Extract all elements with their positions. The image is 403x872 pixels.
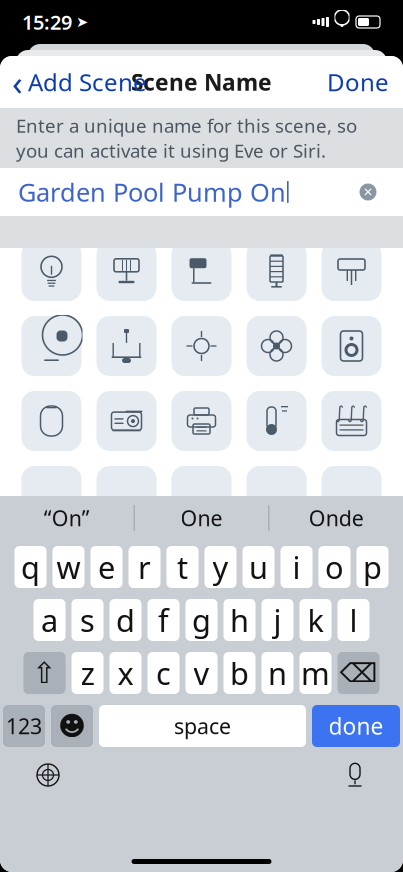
button[interactable]: h: [223, 599, 255, 641]
button[interactable]: o: [318, 546, 350, 588]
button[interactable]: k: [299, 599, 331, 641]
staticText: ⇧: [32, 656, 57, 690]
staticText: a: [41, 600, 58, 640]
staticText: u: [249, 547, 268, 587]
staticText: ✕: [363, 185, 373, 199]
staticText: p: [363, 547, 382, 587]
button[interactable]: j: [261, 599, 293, 641]
button[interactable]: Done: [313, 60, 403, 104]
button[interactable]: u: [242, 546, 274, 588]
staticText: b: [230, 653, 249, 693]
staticText: One: [180, 504, 222, 532]
button[interactable]: s: [71, 599, 103, 641]
staticText: s: [80, 600, 95, 640]
staticText: Onde: [309, 504, 364, 532]
staticText: r: [138, 547, 151, 587]
button[interactable]: 123: [3, 705, 45, 747]
button[interactable]: n: [261, 652, 293, 694]
staticText: i: [292, 547, 300, 587]
button[interactable]: z: [71, 652, 103, 694]
button[interactable]: q: [14, 546, 46, 588]
staticText: f: [158, 600, 169, 640]
staticText: 15:29: [22, 9, 72, 35]
button[interactable]: Smart speaker: [21, 391, 81, 451]
button[interactable]: Light bulb: [21, 241, 81, 301]
staticText: y: [212, 547, 228, 587]
button[interactable]: Delete: [337, 652, 379, 694]
button[interactable]: i: [280, 546, 312, 588]
staticText: x: [117, 653, 133, 693]
staticText: t: [177, 547, 188, 587]
staticText: ‹: [12, 59, 23, 105]
button[interactable]: Arc lamp: [21, 316, 81, 376]
staticText: space: [174, 712, 231, 740]
staticText: k: [307, 600, 323, 640]
staticText: ➤: [76, 14, 88, 30]
button[interactable]: Desk lamp: [171, 241, 231, 301]
button[interactable]: “On”: [0, 496, 134, 540]
button[interactable]: d: [109, 599, 141, 641]
button[interactable]: Heater: [321, 391, 381, 451]
button[interactable]: c: [147, 652, 179, 694]
staticText: ∫: [335, 403, 344, 422]
button[interactable]: Dictate: [333, 755, 377, 795]
staticText: z: [80, 653, 94, 693]
button[interactable]: f: [147, 599, 179, 641]
button[interactable]: Speaker: [321, 316, 381, 376]
button[interactable]: Emoji: [51, 705, 93, 747]
staticText: q: [21, 547, 40, 587]
staticText: m: [301, 653, 330, 693]
staticText: Scene Name: [131, 67, 272, 97]
button[interactable]: w: [52, 546, 84, 588]
button[interactable]: y: [204, 546, 236, 588]
button[interactable]: Column lamp: [246, 241, 306, 301]
staticText: Garden Pool Pump On: [18, 175, 286, 209]
button[interactable]: v: [185, 652, 217, 694]
button[interactable]: g: [185, 599, 217, 641]
button[interactable]: Table lamp: [96, 241, 156, 301]
button[interactable]: Clear text: [351, 175, 385, 209]
staticText: o: [325, 547, 344, 587]
button[interactable]: Printer: [171, 391, 231, 451]
button[interactable]: r: [128, 546, 160, 588]
staticText: ⌫: [339, 658, 377, 688]
staticText: j: [273, 600, 281, 640]
staticText: v: [193, 653, 209, 693]
button[interactable]: m: [299, 652, 331, 694]
button[interactable]: Onde: [269, 496, 403, 540]
staticText: done: [328, 711, 383, 741]
button[interactable]: ‹: [0, 60, 159, 104]
button[interactable]: Thermometer: [246, 391, 306, 451]
staticText: w: [56, 547, 80, 587]
staticText: l: [349, 600, 357, 640]
staticText: ∫: [347, 403, 356, 422]
button[interactable]: Pendant lamp: [96, 316, 156, 376]
button[interactable]: l: [337, 599, 369, 641]
staticText: n: [268, 653, 287, 693]
staticText: h: [230, 600, 249, 640]
staticText: 123: [6, 712, 42, 740]
staticText: Add Scene: [28, 66, 147, 98]
staticText: e: [98, 547, 115, 587]
staticText: d: [116, 600, 135, 640]
button[interactable]: Brightness: [171, 316, 231, 376]
button[interactable]: Fan: [246, 316, 306, 376]
staticText: Done: [327, 66, 389, 98]
button[interactable]: done: [312, 705, 400, 747]
button[interactable]: a: [33, 599, 65, 641]
button[interactable]: Next keyboard: [26, 755, 70, 795]
button[interactable]: p: [356, 546, 388, 588]
button[interactable]: Tripod lamp: [321, 241, 381, 301]
staticText: ☻: [58, 711, 86, 741]
button[interactable]: Radio: [96, 391, 156, 451]
staticText: c: [156, 653, 171, 693]
button[interactable]: t: [166, 546, 198, 588]
button[interactable]: e: [90, 546, 122, 588]
staticText: ∫: [359, 403, 368, 422]
button[interactable]: One: [135, 496, 268, 540]
staticText: “On”: [44, 504, 90, 532]
button[interactable]: b: [223, 652, 255, 694]
button[interactable]: space: [99, 705, 306, 747]
button[interactable]: Shift: [23, 652, 65, 694]
button[interactable]: x: [109, 652, 141, 694]
